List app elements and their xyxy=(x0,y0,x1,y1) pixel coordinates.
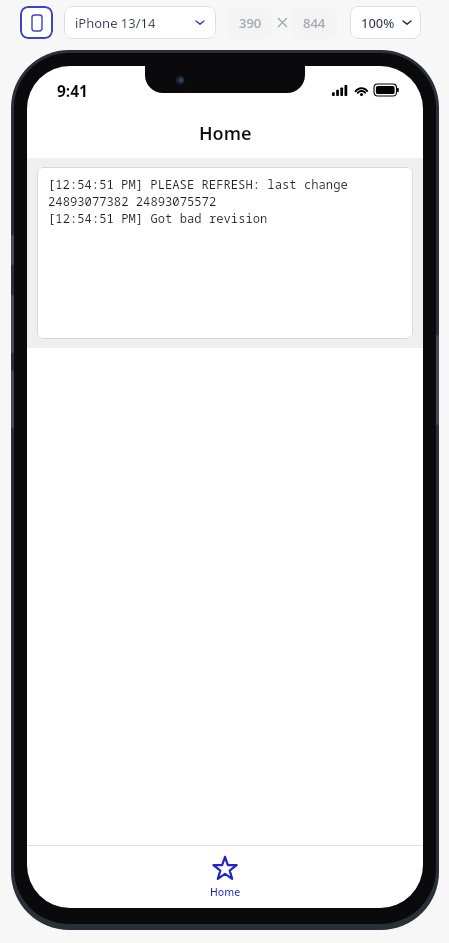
staticText: 844 xyxy=(303,14,326,32)
button[interactable]: 390 xyxy=(227,7,273,39)
staticText: 9:41 xyxy=(57,80,88,101)
button[interactable]: Home xyxy=(27,846,423,908)
staticText: 390 xyxy=(239,14,262,32)
staticText: 100% xyxy=(361,14,395,32)
button[interactable]: iPhone 13/14 xyxy=(64,6,216,39)
staticText: [12:54:51 PM] PLEASE REFRESH: last chang… xyxy=(48,176,348,227)
staticText: iPhone 13/14 xyxy=(75,14,156,32)
button[interactable]: Phone device type xyxy=(20,6,53,39)
staticText: Home xyxy=(210,885,241,899)
button[interactable]: 100% xyxy=(350,6,421,39)
staticText: Home xyxy=(199,121,252,146)
button[interactable]: 844 xyxy=(291,7,337,39)
